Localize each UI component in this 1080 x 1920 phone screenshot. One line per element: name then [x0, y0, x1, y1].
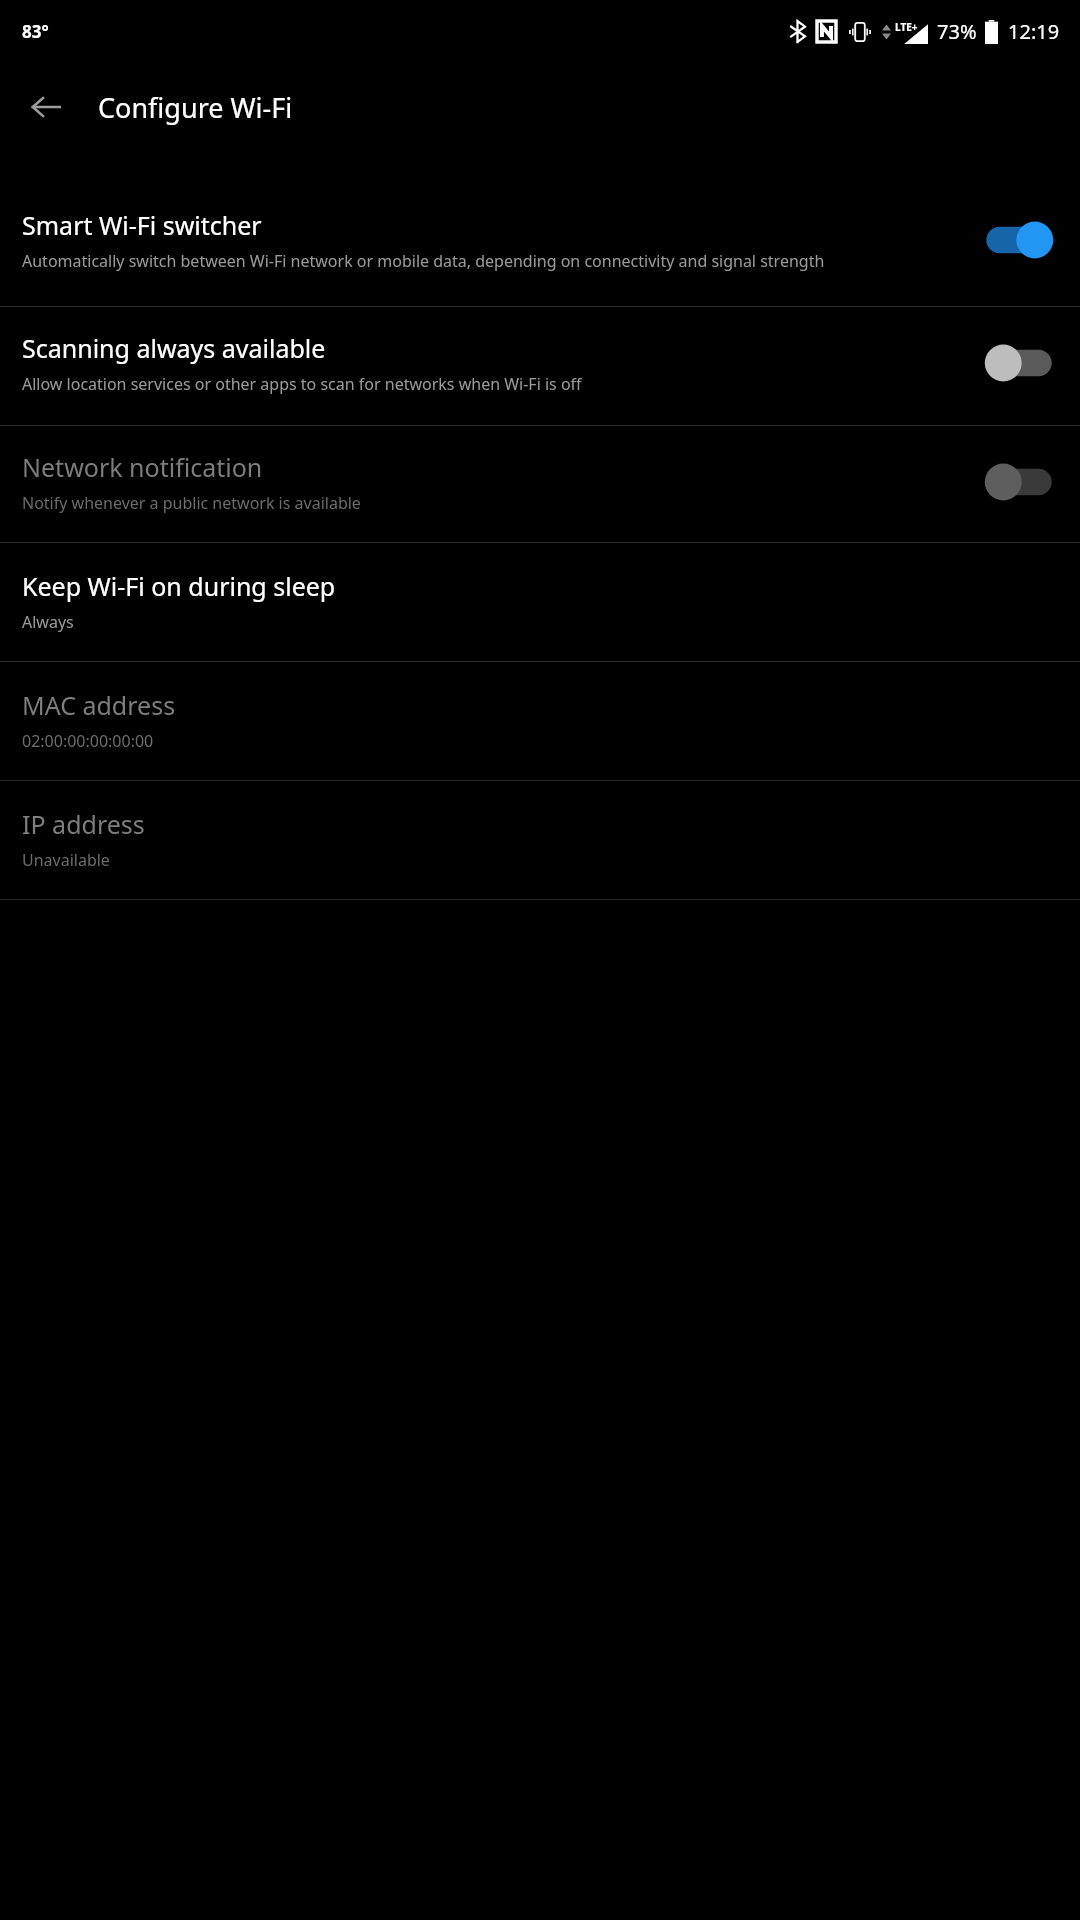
staticText: 12:19	[1008, 18, 1060, 45]
button[interactable]: Scanning always available	[0, 307, 1080, 425]
staticText: 02:00:00:00:00:00	[22, 730, 154, 752]
staticText: MAC address	[22, 688, 176, 722]
button[interactable]: MAC address	[0, 662, 1080, 780]
staticText: LTE+	[895, 20, 918, 34]
staticText: Smart Wi-Fi switcher	[22, 208, 262, 242]
staticText: Automatically switch between Wi-Fi netwo…	[22, 250, 825, 272]
staticText: Configure Wi-Fi	[98, 89, 293, 126]
staticText: Unavailable	[22, 849, 110, 871]
staticText: Scanning always available	[22, 331, 326, 365]
staticText: 83°	[22, 20, 49, 43]
staticText: Always	[22, 611, 74, 633]
staticText: Network notification	[22, 450, 263, 484]
staticText: Allow location services or other apps to…	[22, 373, 582, 395]
button[interactable]: Smart Wi-Fi switcher	[0, 186, 1080, 306]
button[interactable]: Toggle	[980, 218, 1058, 262]
button[interactable]: Toggle	[980, 341, 1058, 385]
button[interactable]: Toggle	[980, 460, 1058, 504]
button[interactable]: IP address	[0, 781, 1080, 899]
button[interactable]: Keep Wi-Fi on during sleep	[0, 543, 1080, 661]
staticText: Notify whenever a public network is avai…	[22, 492, 361, 514]
button[interactable]: Back	[14, 75, 78, 139]
button[interactable]: Network notification	[0, 426, 1080, 542]
staticText: 73%	[937, 18, 977, 45]
staticText: IP address	[22, 807, 145, 841]
staticText: Keep Wi-Fi on during sleep	[22, 569, 336, 603]
